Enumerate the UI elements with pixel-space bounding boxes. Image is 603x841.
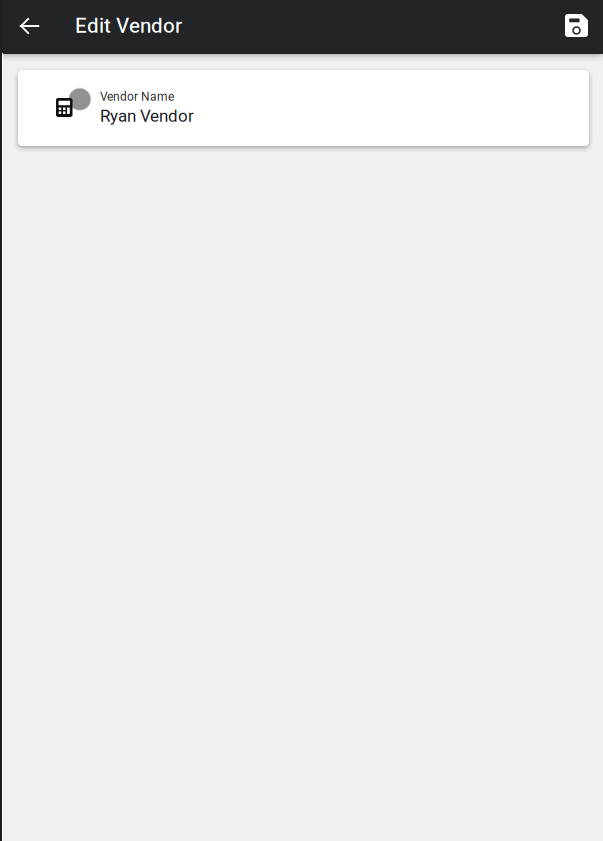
- staticText: Edit Vendor: [75, 13, 182, 38]
- staticText: Ryan Vendor: [100, 106, 194, 126]
- button[interactable]: Save: [555, 4, 597, 46]
- staticText: Vendor Name: [100, 89, 174, 104]
- button[interactable]: Vendor Name: [18, 70, 589, 146]
- button[interactable]: Back: [9, 6, 49, 46]
